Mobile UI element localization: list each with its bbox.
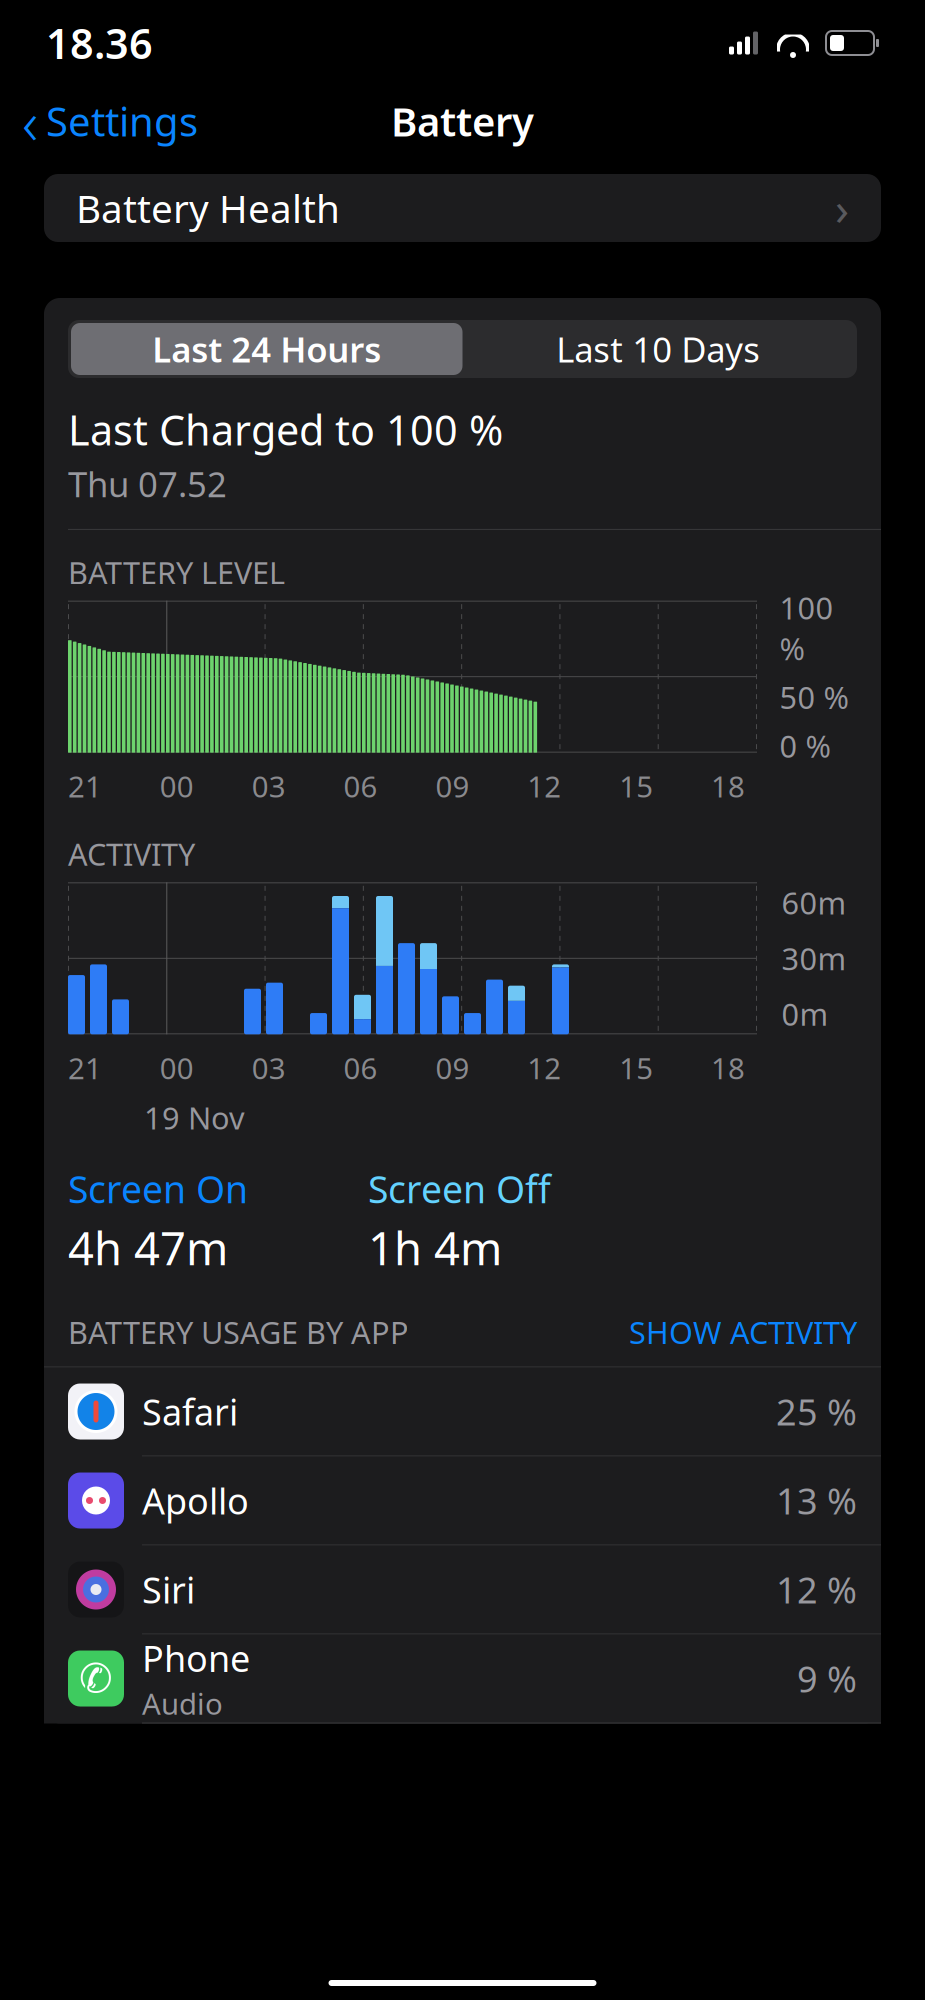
- staticText: 0m: [781, 994, 828, 1034]
- button[interactable]: SHOW ACTIVITY: [629, 1312, 857, 1352]
- staticText: 21: [68, 1048, 102, 1087]
- staticText: 18.36: [46, 16, 153, 70]
- button[interactable]: Battery Health: [44, 174, 881, 242]
- staticText: 00: [160, 1048, 194, 1087]
- staticText: 18: [711, 767, 745, 806]
- staticText: Phone: [142, 1634, 250, 1682]
- staticText: 0 %: [779, 725, 830, 766]
- staticText: Screen Off: [368, 1164, 551, 1214]
- staticText: Last 24 Hours: [152, 326, 381, 372]
- staticText: BATTERY LEVEL: [68, 552, 285, 593]
- staticText: 1h 4m: [368, 1218, 502, 1278]
- staticText: 4h 47m: [68, 1218, 228, 1278]
- staticText: Battery Health: [76, 182, 340, 234]
- staticText: 09: [435, 1048, 469, 1087]
- staticText: 30m: [781, 938, 846, 979]
- button[interactable]: Last 24 Hours: [71, 323, 462, 375]
- staticText: 50 %: [779, 677, 848, 717]
- staticText: Screen On: [68, 1164, 248, 1214]
- staticText: 12: [527, 1048, 561, 1087]
- staticText: 15: [619, 767, 653, 806]
- staticText: Battery: [391, 94, 534, 147]
- staticText: 12 %: [776, 1566, 857, 1613]
- staticText: 9 %: [797, 1655, 857, 1702]
- staticText: ACTIVITY: [68, 834, 195, 874]
- button[interactable]: Apollo: [44, 1456, 881, 1545]
- staticText: BATTERY USAGE BY APP: [68, 1312, 409, 1352]
- staticText: Last 10 Days: [556, 326, 760, 372]
- staticText: Thu 07.52: [68, 461, 227, 507]
- staticText: 06: [344, 767, 378, 806]
- staticText: 12: [527, 767, 561, 806]
- staticText: Last Charged to 100 %: [68, 402, 503, 457]
- staticText: 15: [619, 1048, 653, 1087]
- staticText: ✆: [79, 1656, 113, 1701]
- staticText: ‹: [22, 80, 38, 162]
- staticText: 25 %: [776, 1388, 857, 1435]
- staticText: 03: [252, 1048, 286, 1087]
- button[interactable]: Safari: [44, 1367, 881, 1456]
- button[interactable]: Last 10 Days: [462, 323, 854, 375]
- staticText: 00: [160, 767, 194, 806]
- button[interactable]: ✆: [44, 1634, 881, 1723]
- button[interactable]: Siri: [44, 1545, 881, 1634]
- button[interactable]: ‹: [0, 90, 220, 152]
- staticText: 18: [711, 1048, 745, 1087]
- staticText: Siri: [142, 1566, 195, 1613]
- staticText: 100 %: [779, 587, 833, 669]
- staticText: 06: [344, 1048, 378, 1087]
- staticText: Settings: [46, 94, 198, 147]
- staticText: 13 %: [776, 1477, 857, 1524]
- staticText: Apollo: [142, 1477, 249, 1524]
- staticText: 19 Nov: [144, 1097, 245, 1138]
- staticText: 03: [252, 767, 286, 806]
- staticText: SHOW ACTIVITY: [629, 1312, 857, 1352]
- staticText: Audio: [142, 1684, 223, 1723]
- staticText: 09: [435, 767, 469, 806]
- staticText: Safari: [142, 1388, 238, 1435]
- staticText: 21: [68, 767, 102, 806]
- staticText: 60m: [781, 882, 846, 923]
- staticText: ›: [835, 178, 849, 238]
